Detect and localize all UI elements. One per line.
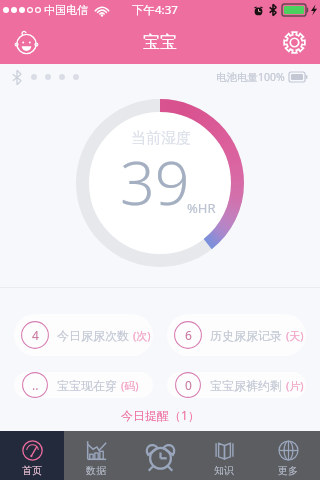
button[interactable]: 知识	[192, 431, 256, 480]
button[interactable]: Alarm	[128, 431, 192, 480]
staticText: 今日提醒（1）	[121, 407, 200, 423]
staticText: 历史尿尿记录	[210, 328, 282, 343]
staticText: ..	[32, 377, 39, 393]
staticText: (天)	[286, 328, 304, 343]
staticText: (片)	[286, 378, 304, 393]
staticText: 中国电信	[44, 3, 88, 17]
staticText: 宝宝	[143, 32, 177, 53]
button[interactable]: 0	[167, 372, 306, 398]
staticText: 今日尿尿次数	[57, 328, 129, 343]
staticText: 首页	[22, 464, 42, 477]
staticText: (码)	[121, 378, 139, 393]
staticText: (次)	[133, 328, 151, 343]
staticText: 39	[120, 140, 190, 223]
staticText: 数据	[86, 464, 106, 477]
button[interactable]: Baby profile	[8, 24, 44, 60]
staticText: 宝宝尿裤约剩	[210, 378, 282, 393]
button[interactable]: 首页	[0, 431, 64, 480]
staticText: %HR	[187, 199, 216, 217]
staticText: 电池电量100%	[216, 70, 285, 84]
button[interactable]: Settings	[276, 24, 312, 60]
button[interactable]: 4	[14, 314, 153, 356]
button[interactable]: ..	[14, 372, 153, 398]
staticText: 4	[32, 327, 39, 343]
button[interactable]: 更多	[256, 431, 320, 480]
button[interactable]: 6	[167, 314, 306, 356]
staticText: 知识	[214, 464, 234, 477]
staticText: 当前湿度	[131, 129, 191, 148]
staticText: 更多	[278, 464, 298, 477]
button[interactable]: 今日提醒（1）	[0, 398, 320, 431]
staticText: 0	[185, 377, 192, 393]
staticText: 下午4:37	[132, 2, 178, 18]
staticText: 宝宝现在穿	[57, 378, 117, 393]
staticText: 6	[185, 327, 192, 343]
button[interactable]: 数据	[64, 431, 128, 480]
